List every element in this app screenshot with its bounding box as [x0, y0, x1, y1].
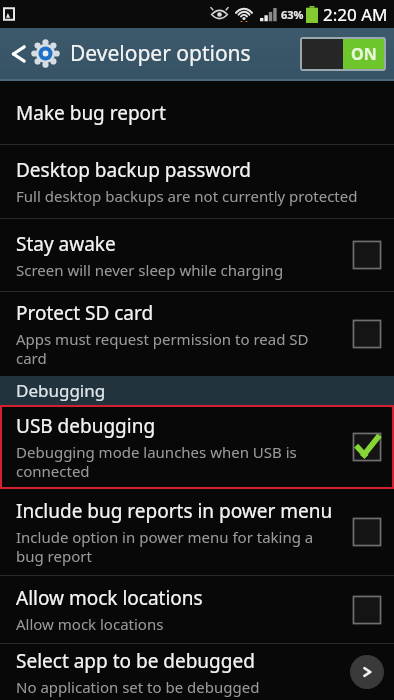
button[interactable]: Developer options on: [300, 37, 386, 71]
staticText: Debugging mode launches when USB is conn…: [16, 442, 297, 481]
staticText: Include bug reports in power menu: [16, 498, 333, 524]
staticText: Include option in power menu for taking …: [16, 527, 314, 566]
staticText: Developer options: [70, 39, 251, 68]
button[interactable]: Open: [350, 655, 384, 689]
staticText: Apps must request permission to read SD …: [16, 329, 309, 368]
staticText: Select app to be debugged: [16, 648, 255, 674]
staticText: Desktop backup password: [16, 157, 251, 183]
staticText: ON: [351, 43, 377, 65]
staticText: No application set to be debugged: [16, 677, 260, 697]
staticText: 2:20 AM: [323, 3, 388, 26]
staticText: 63%: [281, 7, 304, 22]
staticText: Make bug report: [16, 100, 166, 126]
staticText: Allow mock locations: [16, 585, 203, 611]
staticText: Protect SD card: [16, 300, 154, 326]
staticText: Stay awake: [16, 231, 116, 257]
button[interactable]: Allow mock locations: [0, 576, 394, 643]
button[interactable]: Back: [0, 28, 70, 79]
button[interactable]: Select app to be debugged: [0, 644, 394, 700]
staticText: Debugging: [16, 379, 106, 402]
staticText: Full desktop backups are not currently p…: [16, 186, 358, 206]
button[interactable]: Desktop backup password: [0, 145, 394, 218]
staticText: Allow mock locations: [16, 614, 164, 634]
button[interactable]: Stay awake: [0, 219, 394, 291]
button[interactable]: Include bug reports in power menu: [0, 489, 394, 575]
staticText: Screen will never sleep while charging: [16, 260, 284, 280]
staticText: USB debugging: [16, 413, 156, 439]
button[interactable]: Protect SD card: [0, 292, 394, 376]
button[interactable]: Make bug report: [0, 81, 394, 144]
button[interactable]: USB debugging: [0, 405, 394, 489]
